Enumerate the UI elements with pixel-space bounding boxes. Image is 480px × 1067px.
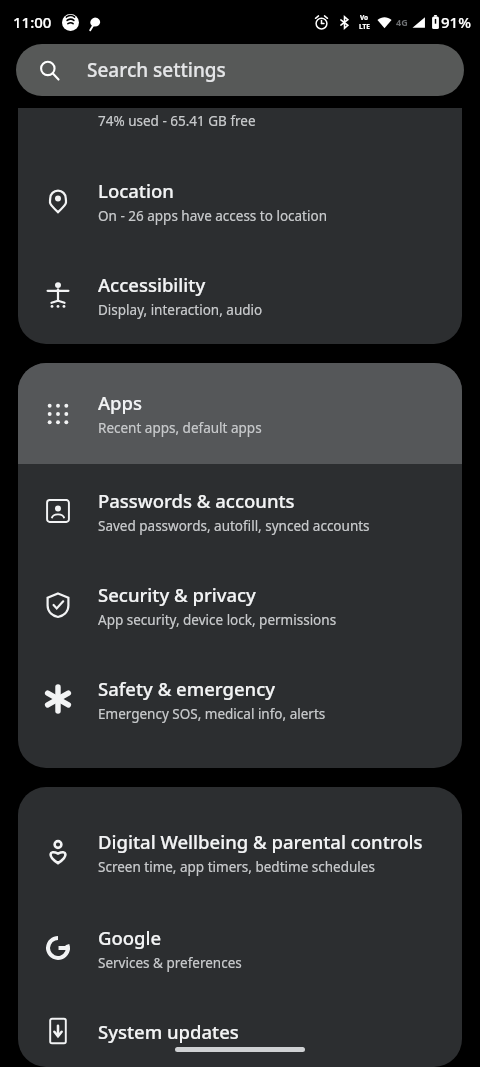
staticText: 11:00 [13, 12, 52, 32]
button[interactable]: Search settings [16, 44, 464, 96]
staticText: System updates [98, 1019, 239, 1044]
staticText: Search settings [87, 57, 226, 83]
button[interactable]: Accessibility [18, 248, 462, 342]
button[interactable]: System updates [18, 995, 462, 1067]
staticText: App security, device lock, permissions [98, 611, 337, 629]
staticText: Digital Wellbeing & parental controls [98, 829, 423, 854]
staticText: 91% [441, 12, 471, 32]
staticText: Screen time, app timers, bedtime schedul… [98, 858, 375, 876]
button[interactable]: Google [18, 901, 462, 995]
staticText: Recent apps, default apps [98, 419, 262, 437]
staticText: Passwords & accounts [98, 488, 295, 513]
button[interactable]: Security [18, 558, 462, 652]
staticText: Saved passwords, autofill, synced accoun… [98, 517, 370, 535]
button[interactable]: Safety [18, 652, 462, 746]
staticText: LTE [359, 22, 370, 31]
staticText: Accessibility [98, 272, 206, 297]
button[interactable]: Apps [18, 363, 462, 464]
staticText: Apps [98, 390, 143, 415]
staticText: 4G [396, 16, 408, 28]
staticText: 74% used - 65.41 GB free [98, 112, 256, 130]
staticText: Services & preferences [98, 954, 242, 972]
staticText: Security & privacy [98, 582, 256, 607]
staticText: Vo [360, 13, 369, 22]
staticText: Google [98, 925, 162, 950]
button[interactable]: Passwords [18, 464, 462, 558]
button[interactable]: Location [18, 154, 462, 248]
button[interactable]: Digital Wellbeing [18, 803, 462, 901]
staticText: On - 26 apps have access to location [98, 207, 327, 225]
staticText: Safety & emergency [98, 676, 276, 701]
staticText: Location [98, 178, 174, 203]
staticText: Emergency SOS, medical info, alerts [98, 705, 326, 723]
staticText: Display, interaction, audio [98, 301, 263, 319]
